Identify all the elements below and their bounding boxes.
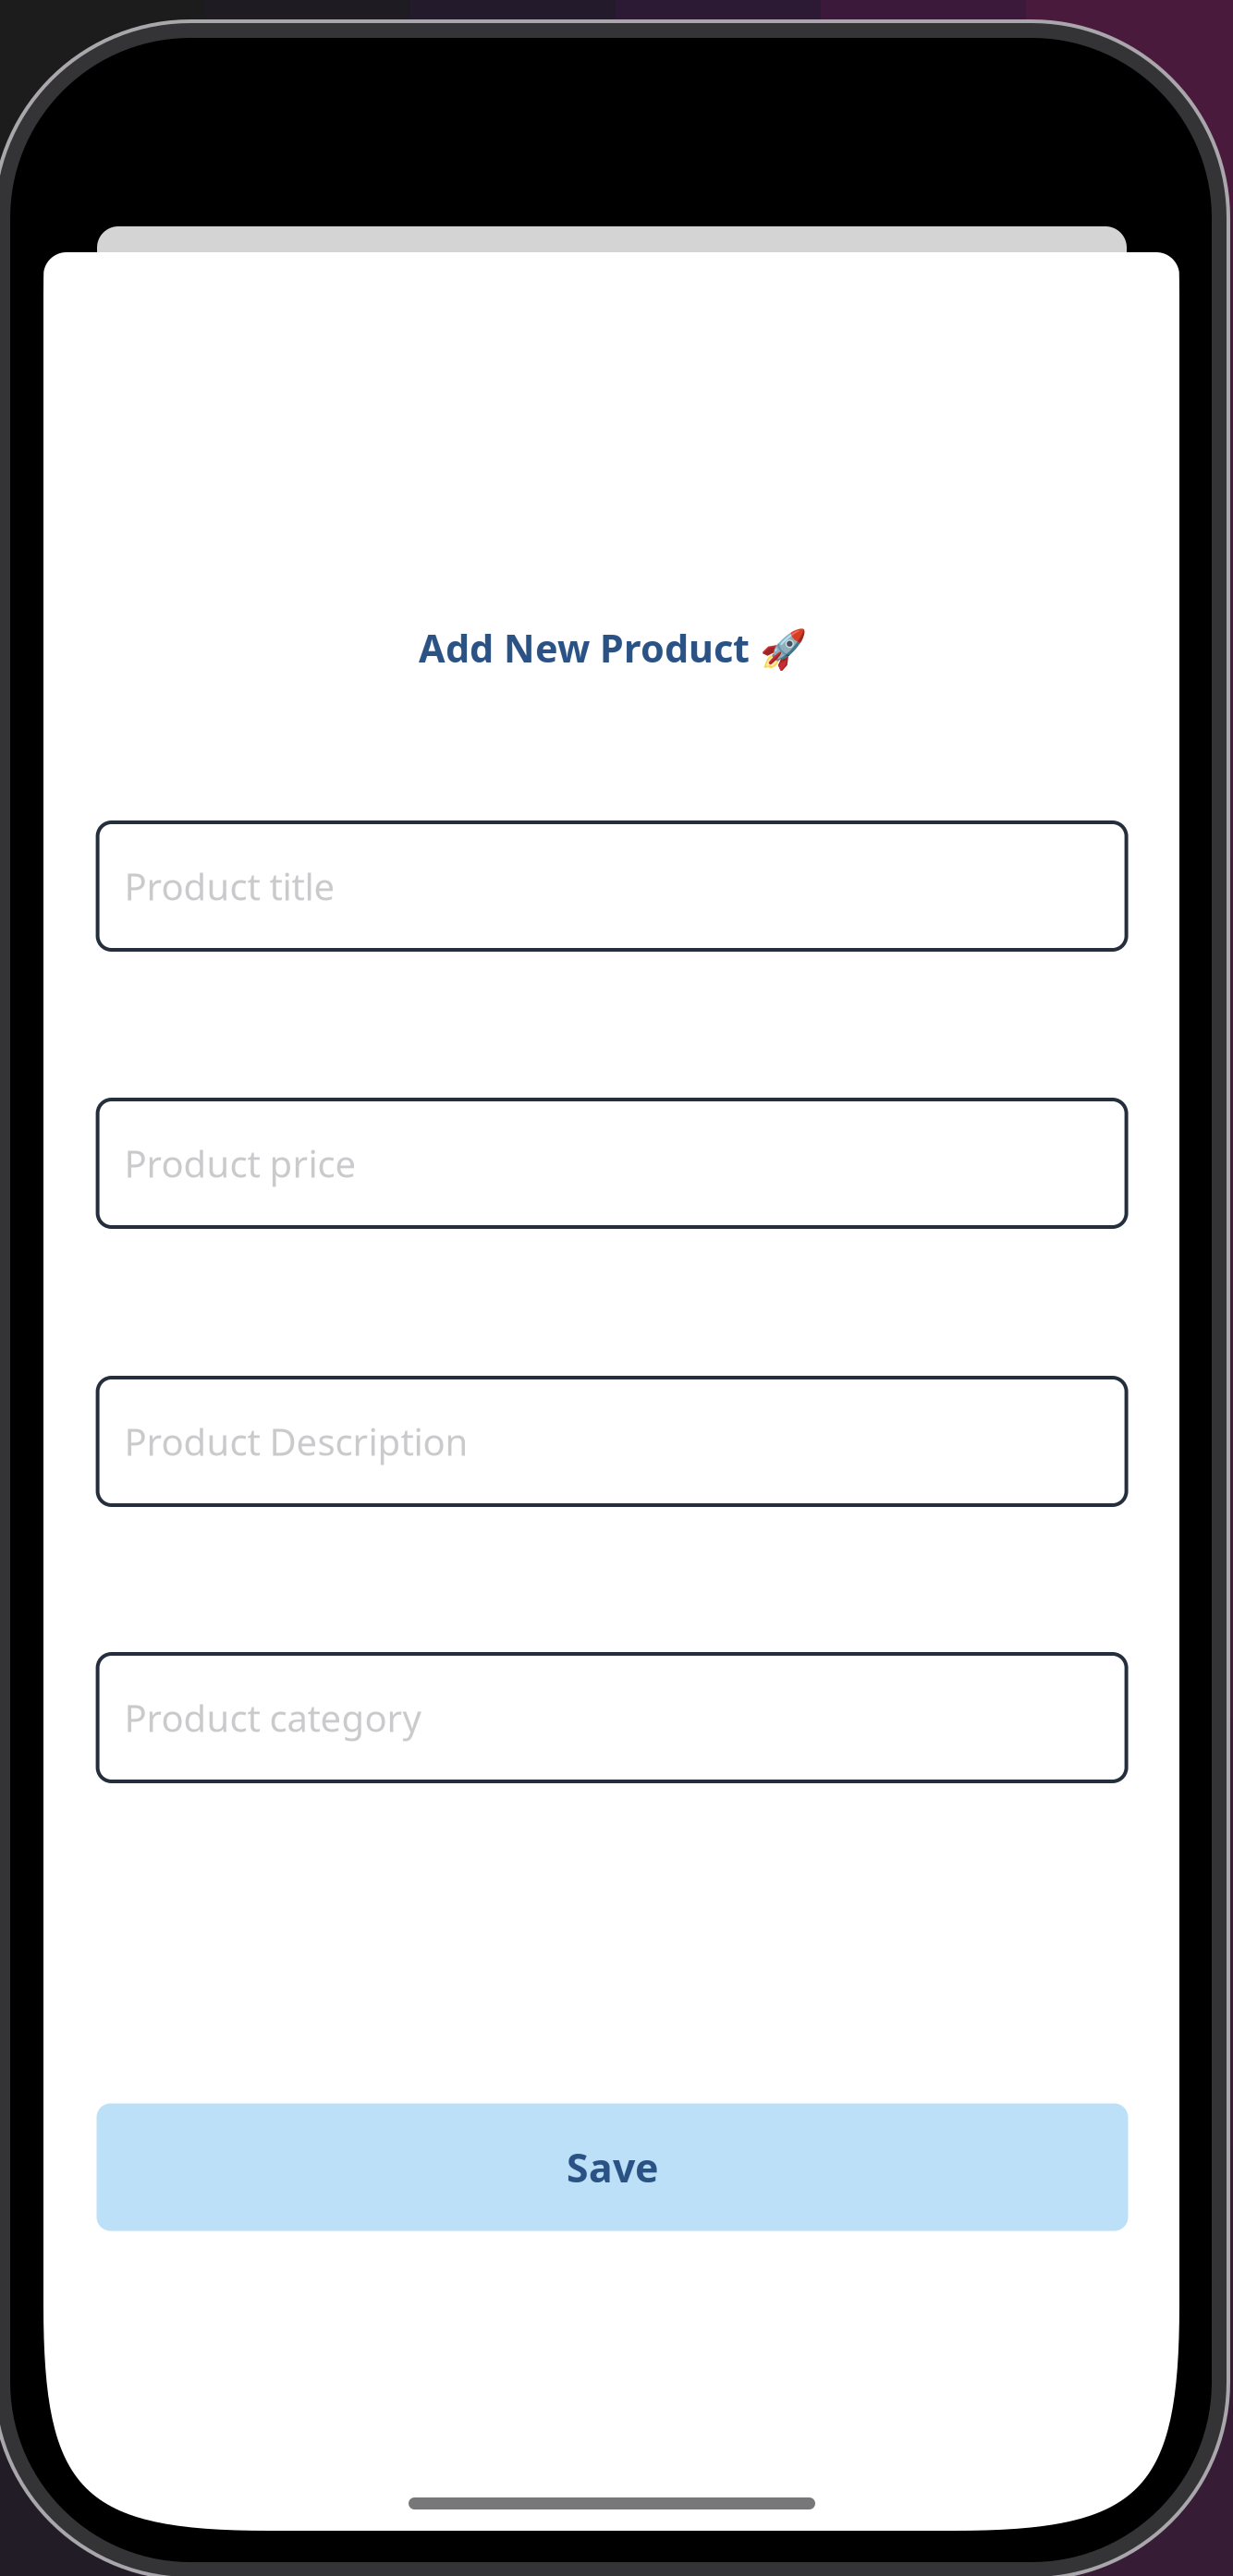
button[interactable]: Save	[97, 2103, 1128, 2231]
button[interactable]: Product category	[98, 1654, 1126, 1781]
staticText: Product price	[124, 1139, 356, 1188]
button[interactable]: Product title	[98, 822, 1126, 950]
staticText: Product Description	[124, 1417, 468, 1466]
staticText: Add New Product 🚀	[419, 622, 807, 673]
staticText: Save	[567, 2141, 658, 2193]
staticText: Product title	[124, 862, 335, 911]
staticText: Product category	[124, 1693, 421, 1742]
button[interactable]: Product Description	[98, 1378, 1126, 1505]
button[interactable]: Product price	[98, 1100, 1126, 1227]
